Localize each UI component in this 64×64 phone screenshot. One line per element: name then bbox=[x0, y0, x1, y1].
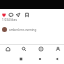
button[interactable]: Recents bbox=[18, 56, 24, 62]
button[interactable]: Search bbox=[21, 46, 27, 52]
button[interactable]: Save bbox=[24, 12, 30, 18]
button[interactable]: Comment bbox=[8, 12, 14, 18]
button[interactable]: Back bbox=[54, 56, 60, 62]
button[interactable]: Reels bbox=[38, 46, 44, 52]
button[interactable]: Profile bbox=[55, 46, 61, 52]
button[interactable]: Profile photo bbox=[2, 27, 7, 32]
staticText: 1 034 likes bbox=[2, 18, 17, 22]
button[interactable]: Home button bbox=[37, 56, 43, 62]
button[interactable]: Home bbox=[5, 46, 11, 52]
staticText: amber.lens evening bbox=[9, 28, 37, 32]
button[interactable]: Like bbox=[1, 12, 7, 18]
button[interactable]: Share bbox=[15, 12, 21, 18]
